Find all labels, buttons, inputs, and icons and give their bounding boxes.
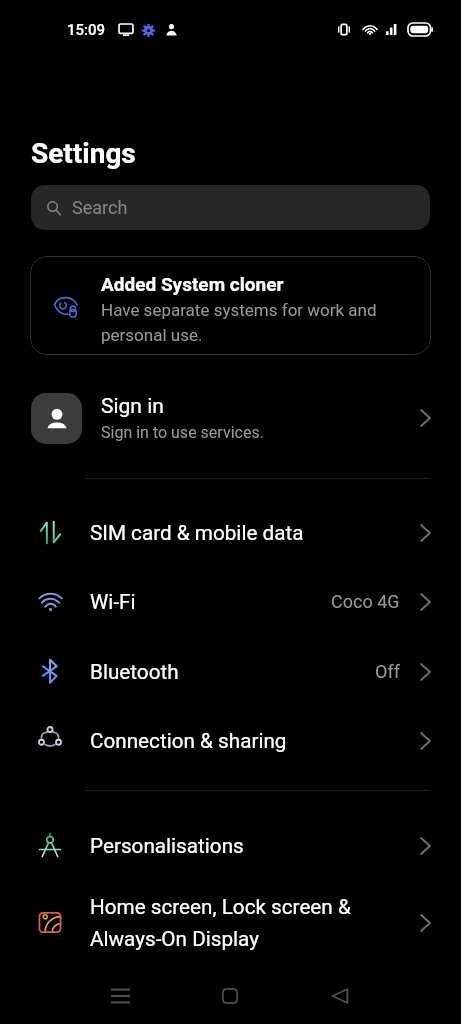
button[interactable]: Sign in [0, 382, 461, 454]
button[interactable]: Search [31, 185, 430, 230]
staticText: Have separate systems for work and perso… [101, 300, 377, 345]
staticText: Bluetooth [90, 660, 375, 684]
staticText: Personalisations [90, 834, 420, 858]
button[interactable]: Personalisations [0, 811, 461, 880]
staticText: Sign in [101, 394, 164, 419]
staticText: Sign in to use services. [101, 423, 264, 442]
staticText: 15:09 [67, 21, 106, 39]
staticText: Search [72, 197, 128, 218]
button[interactable]: Bluetooth [0, 637, 461, 706]
staticText: Settings [31, 137, 136, 170]
staticText: SIM card & mobile data [90, 521, 420, 545]
staticText: Connection & sharing [90, 729, 420, 753]
staticText: Wi-Fi [90, 590, 331, 614]
button[interactable]: Home screen, Lock screen & Always-On Dis… [0, 888, 461, 957]
button[interactable]: SIM card & mobile data [0, 498, 461, 567]
button[interactable]: Back [312, 968, 368, 1024]
button[interactable]: Recent apps [92, 968, 148, 1024]
staticText: Home screen, Lock screen & Always-On Dis… [90, 895, 420, 951]
staticText: Coco 4G [331, 591, 400, 612]
button[interactable]: Added System cloner [30, 256, 431, 355]
staticText: Off [375, 661, 400, 682]
staticText: Added System cloner [101, 273, 284, 295]
button[interactable]: Connection & sharing [0, 706, 461, 775]
button[interactable]: Wi-Fi [0, 567, 461, 636]
button[interactable]: Home [202, 968, 258, 1024]
